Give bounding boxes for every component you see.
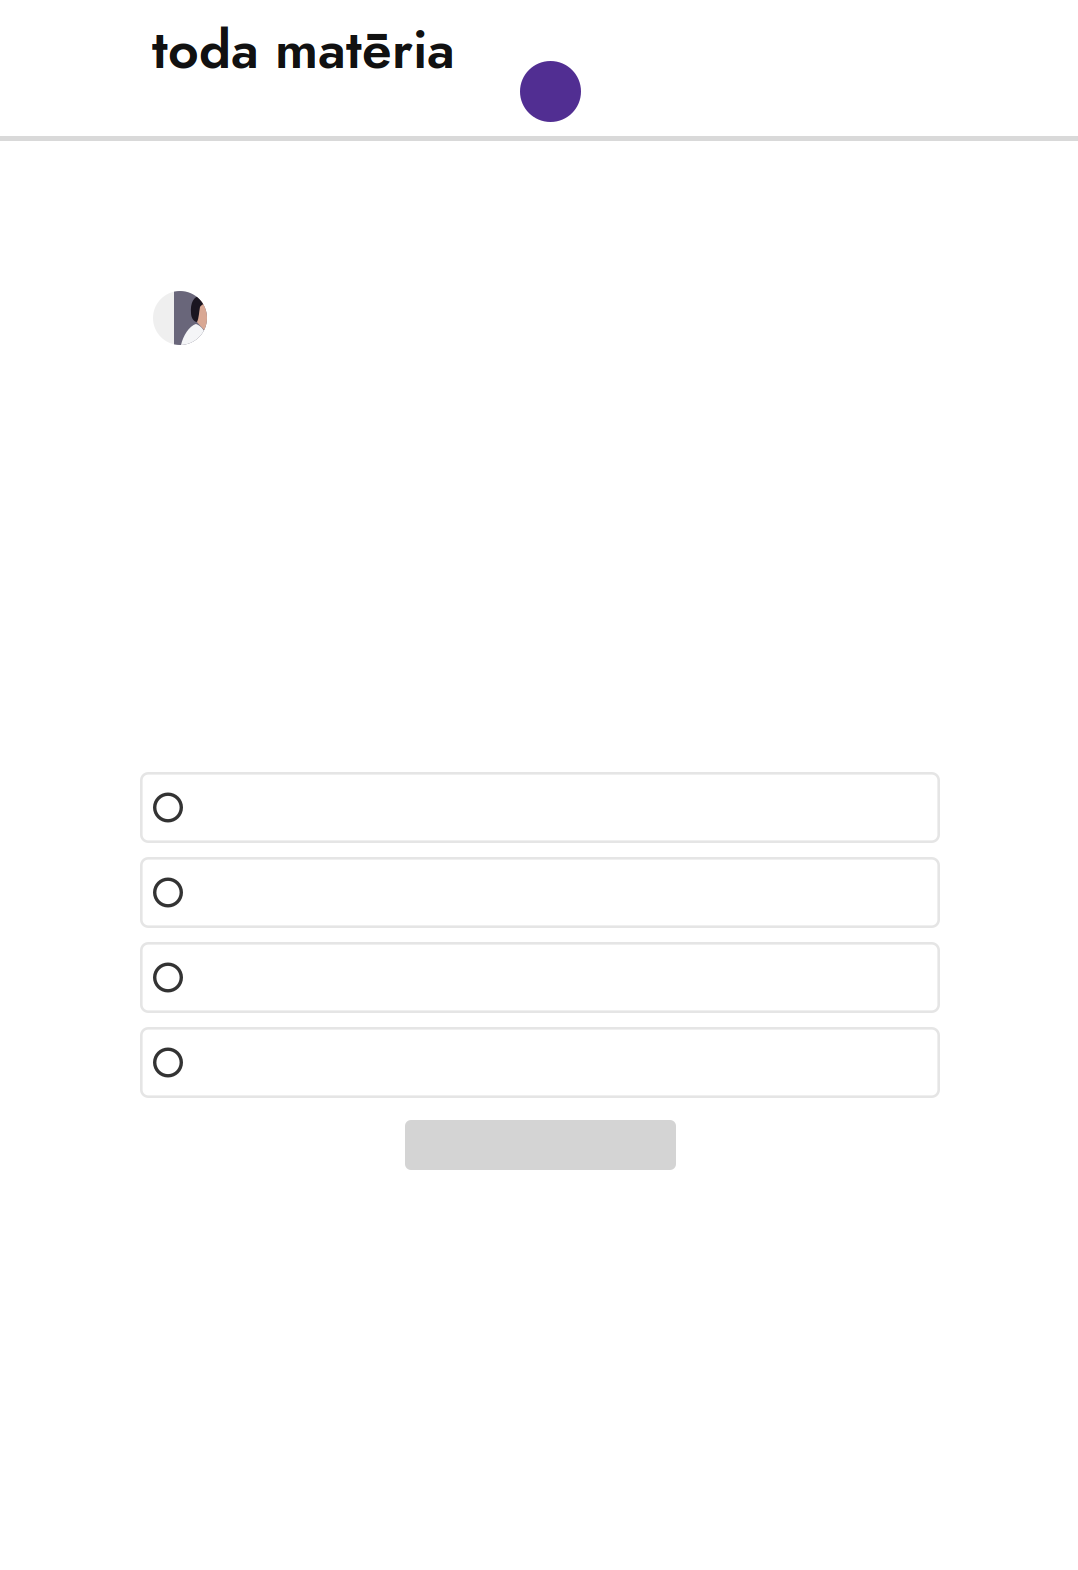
button[interactable]: Alternativa 4 <box>140 1027 940 1098</box>
button[interactable]: toda matēria <box>152 11 455 88</box>
button[interactable]: Alternativa 1 <box>140 772 940 843</box>
button[interactable]: Autora do artigo <box>153 291 207 345</box>
button[interactable]: Conta <box>520 61 581 122</box>
button[interactable]: Alternativa 2 <box>140 857 940 928</box>
staticText: toda matēria <box>152 11 455 88</box>
button[interactable]: Alternativa 3 <box>140 942 940 1013</box>
